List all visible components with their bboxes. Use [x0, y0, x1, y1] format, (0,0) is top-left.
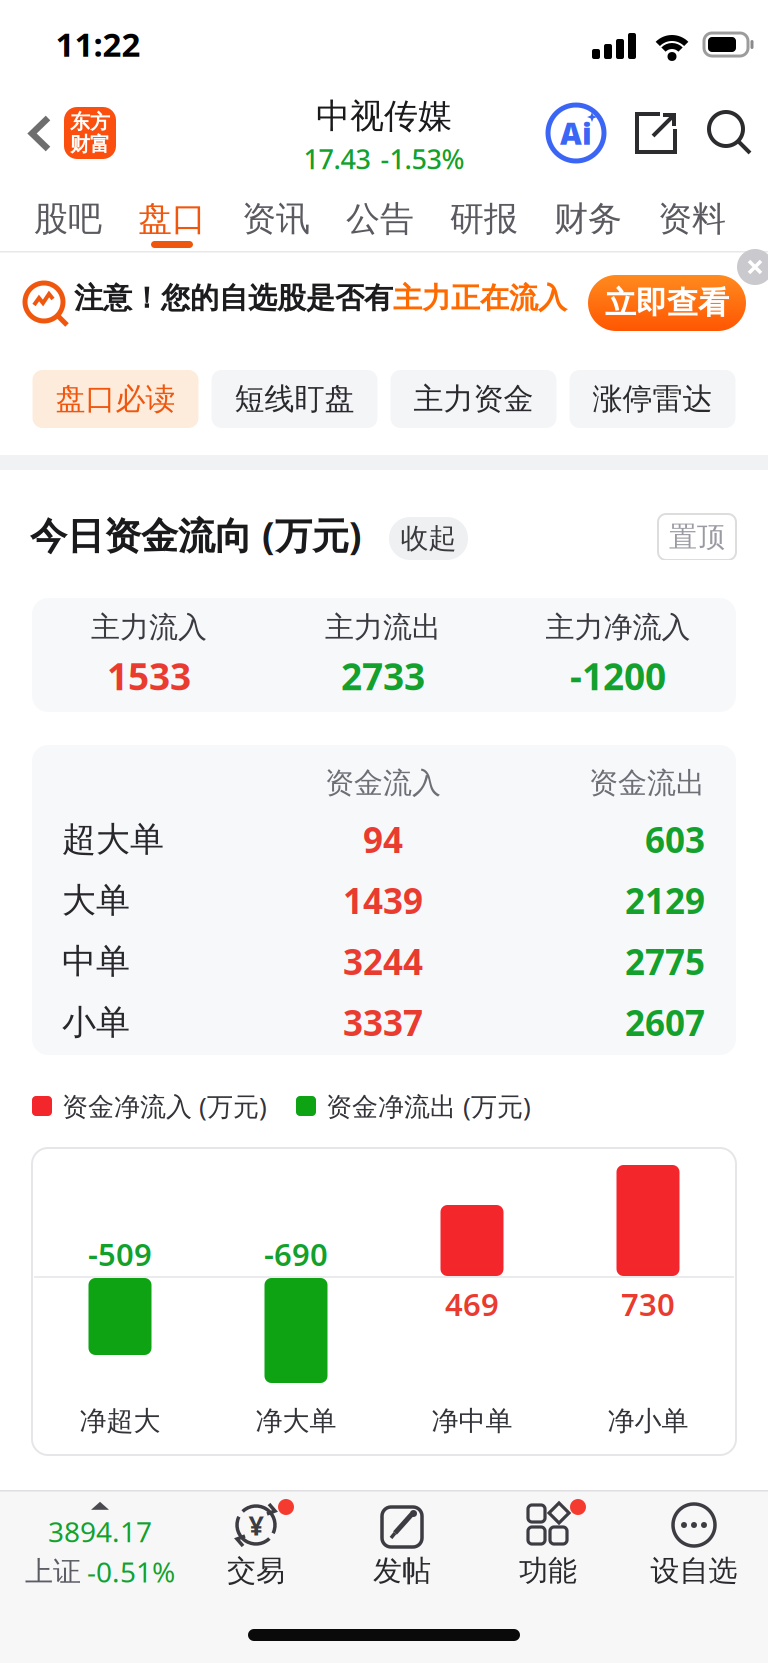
- button[interactable]: 3894.17: [5, 1498, 195, 1594]
- staticText: 发帖: [373, 1553, 431, 1589]
- staticText: 资金流出: [589, 765, 705, 801]
- staticText: 注意！您的自选股是否有: [74, 280, 393, 316]
- button[interactable]: 置顶: [658, 514, 736, 560]
- staticText: 1439: [343, 877, 423, 924]
- staticText: 置顶: [669, 520, 725, 554]
- staticText: 大单: [62, 880, 130, 921]
- staticText: 资金净流入 (万元): [62, 1089, 267, 1123]
- staticText: 资金净流出 (万元): [326, 1089, 531, 1123]
- button[interactable]: 发帖: [342, 1502, 462, 1594]
- button[interactable]: 涨停雷达: [569, 370, 735, 428]
- staticText: 净超大: [79, 1404, 160, 1438]
- button[interactable]: ¥: [196, 1502, 316, 1594]
- button[interactable]: 资料: [640, 184, 744, 250]
- button[interactable]: 资讯: [224, 184, 328, 250]
- button[interactable]: Back: [30, 116, 52, 151]
- staticText: 中单: [62, 941, 130, 982]
- staticText: 469: [445, 1283, 499, 1325]
- staticText: 资讯: [242, 198, 310, 240]
- staticText: 3244: [343, 938, 423, 985]
- staticText: 东方: [70, 109, 110, 134]
- staticText: 中视传媒: [316, 95, 452, 137]
- staticText: 净大单: [255, 1404, 336, 1438]
- staticText: 盘口必读: [55, 381, 175, 417]
- staticText: 盘口: [138, 198, 206, 240]
- staticText: 公告: [346, 198, 414, 240]
- button[interactable]: Search: [708, 111, 752, 155]
- button[interactable]: Share: [634, 111, 678, 155]
- staticText: 主力资金: [413, 381, 533, 417]
- staticText: 财务: [554, 198, 622, 240]
- staticText: 财富: [70, 132, 110, 157]
- staticText: 上证: [25, 1554, 81, 1589]
- staticText: 17.43: [303, 141, 370, 177]
- staticText: ¥: [248, 1507, 263, 1543]
- button[interactable]: 主力资金: [390, 370, 556, 428]
- staticText: 3894.17: [48, 1513, 152, 1550]
- staticText: -1200: [570, 651, 666, 700]
- staticText: 资料: [658, 198, 726, 240]
- staticText: 短线盯盘: [234, 381, 354, 417]
- button[interactable]: 设自选: [624, 1502, 764, 1594]
- button[interactable]: 盘口: [120, 184, 224, 250]
- button[interactable]: 股吧: [16, 184, 120, 250]
- staticText: 净中单: [431, 1404, 512, 1438]
- staticText: 立即查看: [605, 284, 729, 322]
- staticText: 2775: [625, 938, 705, 985]
- staticText: 3337: [343, 999, 423, 1046]
- button[interactable]: AI 助手: [548, 105, 604, 161]
- staticText: 主力净流入: [545, 610, 690, 645]
- staticText: -1.53%: [380, 141, 464, 177]
- staticText: 净小单: [607, 1404, 688, 1438]
- staticText: 设自选: [650, 1553, 737, 1589]
- staticText: -690: [264, 1233, 328, 1275]
- staticText: 小单: [62, 1002, 130, 1043]
- staticText: 2129: [625, 877, 705, 924]
- staticText: 主力流出: [325, 610, 441, 645]
- button[interactable]: 功能: [488, 1502, 608, 1594]
- button[interactable]: 盘口必读: [32, 370, 198, 428]
- staticText: 涨停雷达: [592, 381, 712, 417]
- staticText: 603: [645, 816, 705, 863]
- staticText: 1533: [107, 651, 191, 700]
- staticText: -509: [88, 1233, 152, 1275]
- button[interactable]: Dismiss: [737, 249, 768, 285]
- staticText: 今日资金流向 (万元): [30, 510, 362, 559]
- staticText: 730: [621, 1283, 675, 1325]
- staticText: 11:22: [55, 22, 140, 66]
- button[interactable]: 财务: [536, 184, 640, 250]
- staticText: 股吧: [34, 198, 102, 240]
- staticText: 收起: [400, 521, 456, 556]
- staticText: 超大单: [62, 819, 164, 860]
- staticText: -0.51%: [87, 1553, 175, 1590]
- staticText: 主力正在流入: [393, 280, 567, 316]
- staticText: Ai: [560, 113, 592, 153]
- staticText: 94: [363, 816, 403, 863]
- button[interactable]: 短线盯盘: [211, 370, 377, 428]
- button[interactable]: 收起: [389, 517, 468, 560]
- button[interactable]: 公告: [328, 184, 432, 250]
- staticText: 主力流入: [91, 610, 207, 645]
- staticText: 交易: [227, 1553, 285, 1589]
- staticText: 研报: [450, 198, 518, 240]
- staticText: 2733: [341, 651, 425, 700]
- staticText: 资金流入: [325, 765, 441, 801]
- button[interactable]: 立即查看: [588, 275, 746, 331]
- staticText: 2607: [625, 999, 705, 1046]
- staticText: 功能: [519, 1553, 577, 1589]
- button[interactable]: 东方财富: [64, 107, 116, 159]
- button[interactable]: 研报: [432, 184, 536, 250]
